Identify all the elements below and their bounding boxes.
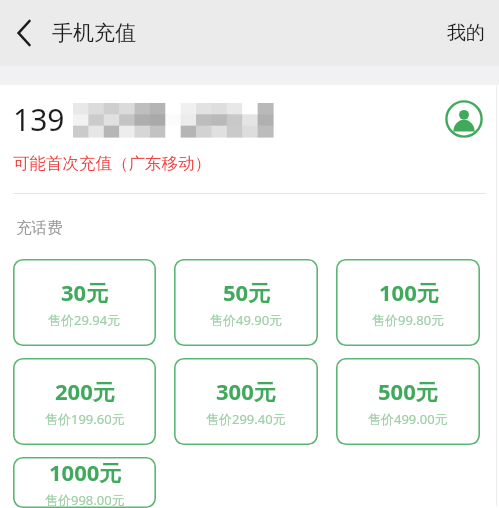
- button[interactable]: 1000元: [13, 457, 156, 508]
- staticText: 300元: [216, 376, 276, 406]
- staticText: 售价998.00元: [45, 491, 125, 508]
- button[interactable]: 500元: [336, 358, 480, 445]
- button[interactable]: 30元: [13, 259, 156, 346]
- staticText: 200元: [55, 376, 115, 406]
- button[interactable]: 我的: [443, 15, 489, 51]
- staticText: 30元: [61, 277, 109, 307]
- staticText: 售价299.40元: [206, 410, 286, 428]
- staticText: 100元: [379, 277, 439, 307]
- button[interactable]: 100元: [336, 259, 480, 346]
- staticText: 139: [13, 99, 65, 140]
- button[interactable]: Back: [6, 11, 44, 55]
- staticText: 售价99.80元: [372, 311, 445, 329]
- button[interactable]: 300元: [174, 358, 318, 445]
- button[interactable]: 手机充值: [52, 20, 136, 46]
- staticText: 50元: [223, 277, 271, 307]
- button[interactable]: 200元: [13, 358, 156, 445]
- button[interactable]: Account: [442, 97, 486, 141]
- staticText: 售价499.00元: [368, 410, 448, 428]
- staticText: 手机充值: [52, 20, 136, 46]
- staticText: 1000元: [49, 457, 122, 487]
- staticText: 充话费: [16, 218, 63, 238]
- staticText: 售价29.94元: [48, 311, 121, 329]
- staticText: 售价199.60元: [45, 410, 125, 428]
- button[interactable]: 50元: [174, 259, 318, 346]
- staticText: 500元: [378, 376, 438, 406]
- staticText: 可能首次充值（广东移动）: [13, 153, 211, 174]
- staticText: 售价49.90元: [210, 311, 283, 329]
- staticText: 我的: [447, 21, 485, 45]
